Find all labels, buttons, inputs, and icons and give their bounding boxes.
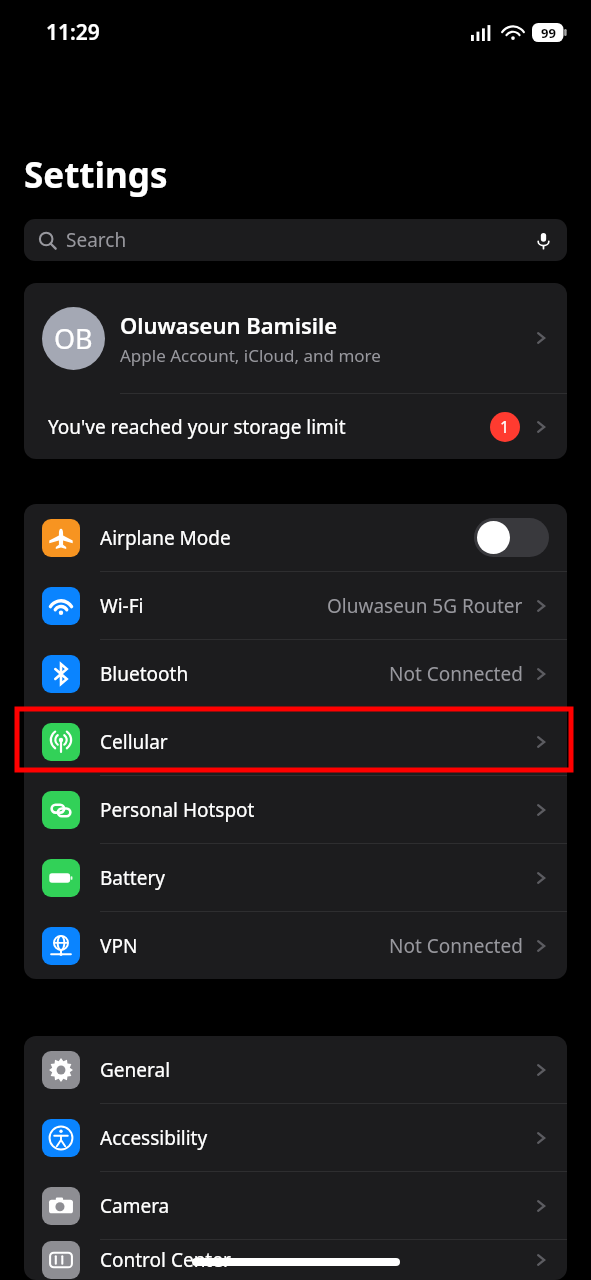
staticText: Camera bbox=[100, 1193, 533, 1219]
staticText: 99 bbox=[541, 24, 556, 42]
staticText: 1 bbox=[500, 416, 510, 438]
button[interactable]: Search bbox=[24, 219, 567, 261]
staticText: General bbox=[100, 1057, 533, 1083]
staticText: Settings bbox=[24, 151, 168, 199]
button[interactable]: VPN bbox=[24, 912, 567, 979]
staticText: Oluwaseun 5G Router bbox=[327, 593, 523, 619]
staticText: Accessibility bbox=[100, 1125, 533, 1151]
staticText: 11:29 bbox=[46, 18, 100, 47]
button[interactable]: Personal Hotspot bbox=[24, 776, 567, 843]
staticText: OB bbox=[54, 320, 93, 357]
button[interactable]: Wi-Fi bbox=[24, 572, 567, 639]
staticText: Battery bbox=[100, 865, 533, 891]
staticText: Wi-Fi bbox=[100, 593, 327, 619]
button[interactable]: Control Center bbox=[24, 1240, 567, 1280]
button[interactable]: Accessibility bbox=[24, 1104, 567, 1171]
other: Voice search bbox=[534, 231, 553, 250]
staticText: Not Connected bbox=[389, 933, 523, 959]
staticText: Airplane Mode bbox=[100, 525, 474, 551]
button[interactable]: Bluetooth bbox=[24, 640, 567, 707]
button[interactable]: Battery bbox=[24, 844, 567, 911]
button[interactable]: You've reached your storage limit bbox=[24, 394, 567, 459]
button[interactable]: Camera bbox=[24, 1172, 567, 1239]
staticText: You've reached your storage limit bbox=[48, 414, 490, 440]
staticText: Oluwaseun Bamisile bbox=[120, 310, 338, 340]
button[interactable]: Airplane Mode bbox=[24, 504, 567, 571]
staticText: Bluetooth bbox=[100, 661, 389, 687]
button[interactable]: Cellular bbox=[24, 708, 567, 775]
button[interactable]: Airplane Mode toggle bbox=[474, 518, 549, 557]
button[interactable]: General bbox=[24, 1036, 567, 1103]
button[interactable]: OB bbox=[24, 283, 567, 393]
staticText: VPN bbox=[100, 933, 389, 959]
staticText: Not Connected bbox=[389, 661, 523, 687]
staticText: Cellular bbox=[100, 729, 533, 755]
staticText: Apple Account, iCloud, and more bbox=[120, 344, 381, 367]
staticText: Control Center bbox=[100, 1247, 533, 1273]
staticText: Personal Hotspot bbox=[100, 797, 533, 823]
staticText: Search bbox=[66, 227, 534, 253]
